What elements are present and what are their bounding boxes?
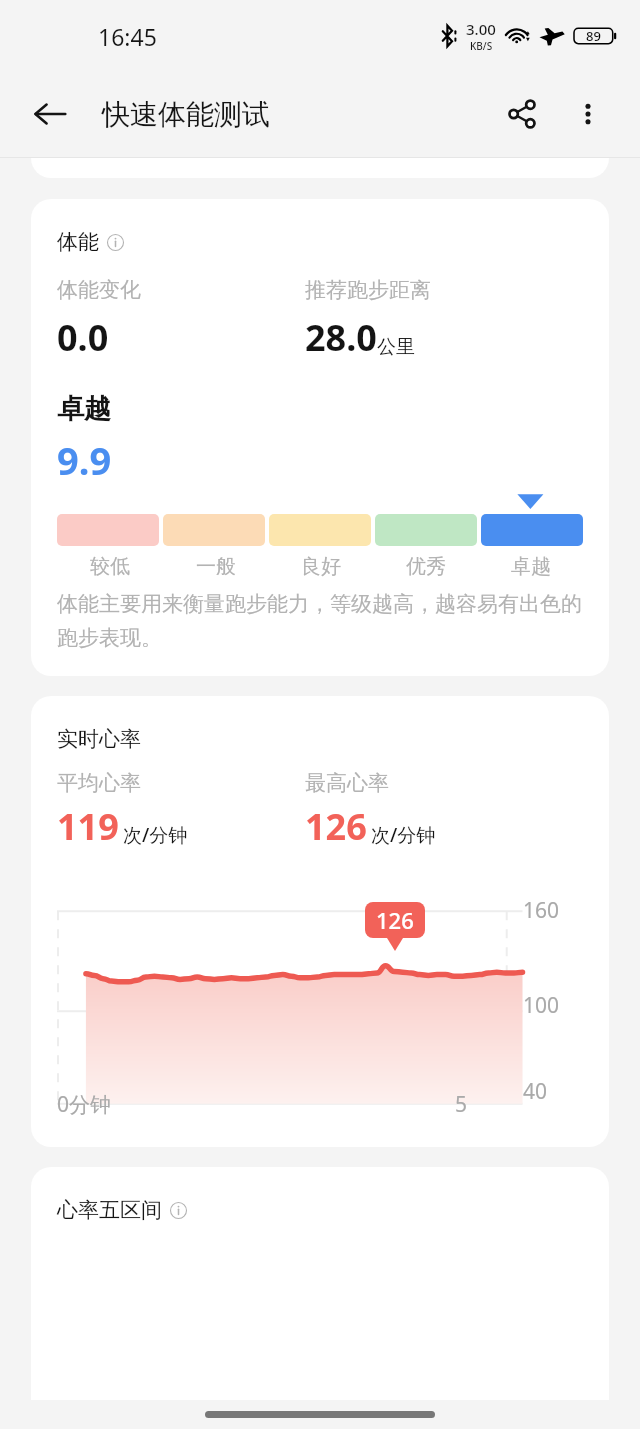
staticText: 较低 <box>90 554 130 579</box>
staticText: 体能 <box>57 229 99 255</box>
staticText: 5 <box>455 1090 468 1119</box>
staticText: 0.0 <box>57 313 109 362</box>
button[interactable]: 体能 <box>31 199 609 676</box>
button[interactable]: Share <box>494 86 550 142</box>
staticText: 126 <box>305 802 367 851</box>
staticText: 3.00 <box>466 19 496 39</box>
staticText: 体能主要用来衡量跑步能力，等级越高，越容易有出色的跑步表现。 <box>57 591 583 652</box>
staticText: 119 <box>57 802 119 851</box>
staticText: 16:45 <box>98 21 157 52</box>
staticText: 最高心率 <box>305 770 389 796</box>
staticText: KB/S <box>470 39 493 53</box>
staticText: 次/分钟 <box>123 822 188 848</box>
staticText: 心率五区间 <box>57 1197 162 1223</box>
button[interactable]: 实时心率 <box>31 696 609 1147</box>
staticText: 卓越 <box>511 554 551 579</box>
staticText: 89 <box>586 27 601 45</box>
staticText: 平均心率 <box>57 770 141 796</box>
staticText: 0分钟 <box>57 1090 112 1119</box>
button[interactable]: 心率五区间 <box>31 1167 609 1400</box>
staticText: 推荐跑步距离 <box>305 277 431 303</box>
staticText: 良好 <box>301 554 341 579</box>
staticText: 实时心率 <box>57 726 141 752</box>
staticText: 40 <box>523 1077 548 1106</box>
staticText: 一般 <box>196 554 236 579</box>
staticText: 卓越 <box>57 392 111 426</box>
staticText: 优秀 <box>406 554 446 579</box>
staticText: 体能变化 <box>57 277 141 303</box>
staticText: 公里 <box>377 335 415 359</box>
staticText: 快速体能测试 <box>102 97 270 132</box>
staticText: 100 <box>523 991 560 1020</box>
button[interactable]: More options <box>560 86 616 142</box>
staticText: 160 <box>523 896 560 925</box>
staticText: 9.9 <box>57 434 112 486</box>
staticText: 次/分钟 <box>371 822 436 848</box>
staticText: 28.0 <box>305 313 377 362</box>
button[interactable]: Back <box>24 88 76 140</box>
staticText: 126 <box>376 905 414 935</box>
